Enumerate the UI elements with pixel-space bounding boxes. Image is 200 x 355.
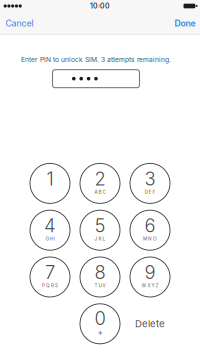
staticText: A B C (94, 189, 105, 195)
staticText: 3 (144, 168, 155, 190)
staticText: Done (174, 18, 195, 29)
staticText: + (97, 327, 102, 337)
button[interactable]: 3 (130, 163, 170, 203)
staticText: D E F (144, 189, 155, 195)
staticText: P Q R S (42, 283, 58, 288)
button[interactable]: 5 (80, 210, 120, 250)
button[interactable]: Done (166, 12, 200, 34)
button[interactable]: Cancel (0, 12, 41, 34)
staticText: 5 (94, 214, 105, 237)
staticText: 4 (44, 214, 56, 237)
button[interactable]: 6 (130, 210, 170, 250)
staticText: 1 (46, 168, 53, 190)
staticText: J K L (94, 236, 105, 241)
button[interactable]: 8 (80, 257, 120, 297)
staticText: 8 (94, 261, 105, 284)
staticText: T U V (94, 283, 105, 288)
button[interactable]: 7 (30, 257, 70, 297)
staticText: W X Y Z (141, 283, 158, 288)
staticText: 6 (144, 214, 155, 237)
staticText: 2 (94, 168, 105, 190)
staticText: Enter PIN to unlock SIM. 3 attempts rema… (21, 56, 171, 64)
button[interactable]: 1 (30, 163, 70, 203)
staticText: M N O (143, 236, 157, 241)
staticText: G H I (45, 236, 54, 241)
button[interactable]: 9 (130, 257, 170, 297)
staticText: 10:00 (90, 2, 110, 10)
staticText: 7 (45, 261, 55, 284)
staticText: Delete (135, 318, 165, 330)
staticText: Cancel (5, 18, 33, 29)
button[interactable]: 0 (80, 304, 120, 344)
button[interactable]: 2 (80, 163, 120, 203)
button[interactable]: Delete (130, 304, 170, 344)
button[interactable]: 4 (30, 210, 70, 250)
staticText: 9 (144, 261, 155, 284)
staticText: 0 (94, 307, 105, 329)
